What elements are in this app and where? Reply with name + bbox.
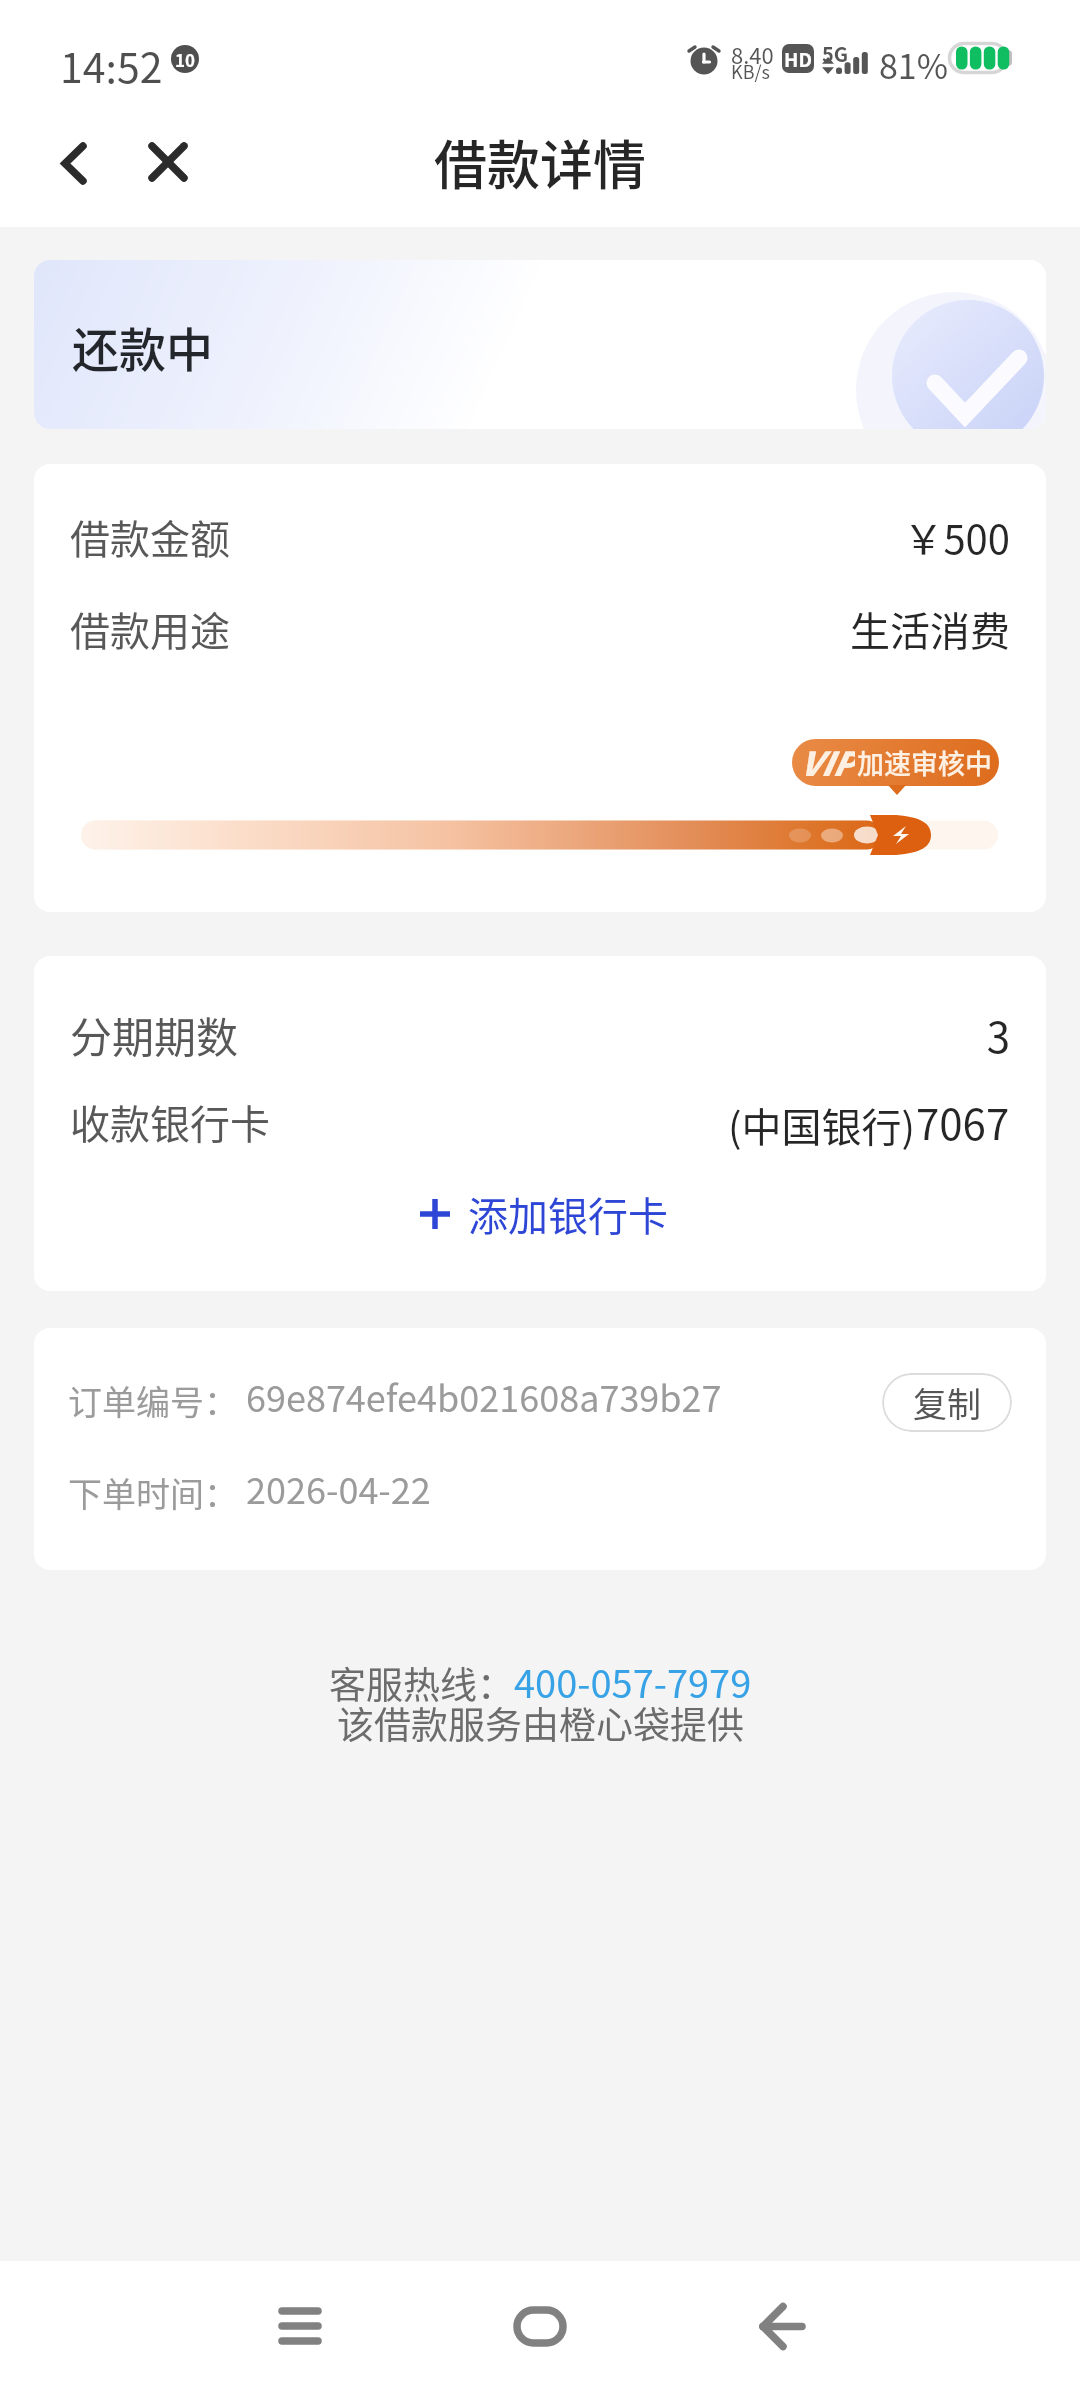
staticText: (中国银行)	[728, 1096, 916, 1154]
staticText: 400-057-7979	[514, 1654, 752, 1709]
button[interactable]: 添加银行卡	[420, 1178, 668, 1250]
button[interactable]: Back	[38, 127, 110, 199]
staticText: 81%	[879, 40, 949, 89]
staticText: 客服热线：	[329, 1656, 514, 1710]
staticText: 下单时间：	[68, 1468, 238, 1517]
staticText: 2026-04-22	[246, 1462, 431, 1514]
staticText: 10	[175, 47, 196, 72]
button[interactable]: Recents	[260, 2286, 340, 2366]
staticText: 3	[34, 1004, 1010, 1065]
staticText: 还款中	[72, 312, 213, 380]
staticText: 5G	[822, 39, 849, 68]
button[interactable]: Back	[742, 2286, 822, 2366]
staticText: VIP	[799, 739, 855, 785]
staticText: 借款详情	[0, 124, 1080, 201]
staticText: 14:52	[60, 35, 163, 94]
staticText: 复制	[913, 1378, 981, 1427]
button[interactable]: 复制	[882, 1373, 1012, 1432]
button[interactable]: Close	[132, 126, 204, 198]
staticText: KB/s	[731, 58, 770, 84]
staticText: 7067	[916, 1091, 1010, 1152]
staticText: HD	[784, 45, 812, 73]
staticText: 生活消费	[34, 600, 1010, 658]
staticText: 订单编号：	[68, 1376, 238, 1425]
staticText: 收款银行卡	[70, 1093, 270, 1151]
button[interactable]: Home	[500, 2286, 580, 2366]
staticText: 借款用途	[70, 600, 230, 658]
staticText: 添加银行卡	[468, 1185, 668, 1243]
staticText: ￥500	[34, 508, 1010, 566]
staticText: 分期期数	[70, 1004, 239, 1065]
staticText: 该借款服务由橙心袋提供	[337, 1696, 744, 1750]
staticText: 加速审核中	[857, 743, 992, 782]
staticText: 借款金额	[70, 508, 230, 566]
staticText: 8.40	[731, 38, 774, 70]
staticText: 69e874efe4b021608a739b27	[246, 1370, 722, 1422]
